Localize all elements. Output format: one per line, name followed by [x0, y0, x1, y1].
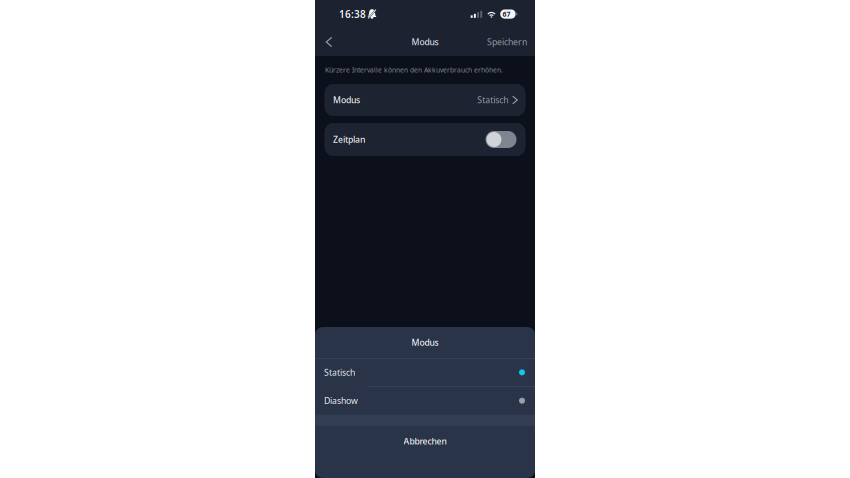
staticText: Modus: [411, 36, 438, 48]
button[interactable]: Back: [315, 31, 342, 53]
button[interactable]: Zeitplan: [485, 131, 516, 148]
staticText: 16:38: [339, 7, 366, 21]
staticText: 67: [502, 9, 510, 19]
staticText: Statisch: [324, 367, 355, 378]
button[interactable]: Diashow: [315, 387, 535, 415]
button[interactable]: Statisch: [315, 359, 535, 386]
staticText: Modus: [411, 337, 438, 348]
button[interactable]: Speichern: [477, 30, 535, 54]
staticText: Speichern: [487, 36, 527, 48]
staticText: Zeitplan: [333, 134, 365, 145]
staticText: Modus: [333, 94, 360, 106]
staticText: Statisch: [477, 94, 508, 106]
staticText: Abbrechen: [403, 435, 446, 447]
staticText: Diashow: [324, 395, 358, 406]
button[interactable]: Abbrechen: [315, 426, 535, 457]
staticText: Kürzere Intervalle können den Akkuverbra…: [325, 66, 503, 74]
button[interactable]: Modus: [324, 84, 525, 116]
